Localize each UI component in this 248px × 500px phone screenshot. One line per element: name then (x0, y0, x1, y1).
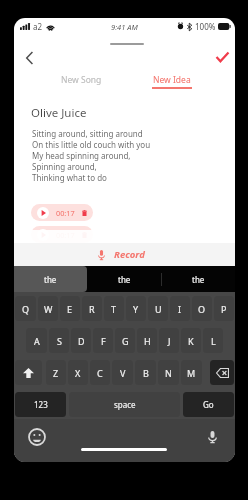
staticText: space (114, 399, 136, 410)
button[interactable]: X (68, 360, 88, 385)
button[interactable]: J (159, 328, 179, 353)
button[interactable]: G (115, 328, 135, 353)
button[interactable]: R (82, 296, 102, 321)
button[interactable]: the (14, 266, 87, 292)
button[interactable]: Y (126, 296, 146, 321)
button[interactable]: H (137, 328, 157, 353)
staticText: the (118, 274, 131, 285)
staticText: B (143, 367, 149, 379)
button[interactable]: Shift (15, 360, 42, 385)
button[interactable]: space (69, 392, 180, 417)
button[interactable]: New Song (56, 71, 106, 89)
staticText: T (111, 303, 117, 315)
button[interactable]: T (104, 296, 124, 321)
button[interactable]: O (192, 296, 212, 321)
button[interactable]: 123 (15, 392, 66, 417)
staticText: Q (22, 303, 30, 315)
staticText: Go (203, 399, 214, 410)
staticText: F (101, 335, 106, 347)
staticText: I (178, 303, 182, 315)
button[interactable]: W (38, 296, 58, 321)
staticText: Record (114, 248, 145, 261)
button[interactable]: 00:17 (31, 226, 93, 243)
staticText: 100% (195, 21, 216, 32)
staticText: N (165, 367, 172, 379)
staticText: E (67, 303, 73, 315)
button[interactable]: the (161, 266, 235, 292)
staticText: D (78, 335, 85, 347)
staticText: M (187, 367, 196, 379)
staticText: 123 (34, 399, 48, 410)
staticText: Z (53, 367, 59, 379)
button[interactable]: the (87, 266, 161, 292)
button[interactable]: C (90, 360, 110, 385)
staticText: X (75, 367, 81, 379)
staticText: the (192, 274, 205, 285)
button[interactable]: D (71, 328, 91, 353)
staticText: O (198, 303, 206, 315)
staticText: G (122, 335, 129, 347)
staticText: U (155, 303, 162, 315)
button[interactable]: K (181, 328, 201, 353)
button[interactable]: E (60, 296, 80, 321)
button[interactable]: B (135, 360, 156, 385)
button[interactable]: 00:17 (31, 204, 93, 221)
button[interactable]: V (112, 360, 133, 385)
button[interactable]: Voice input (204, 429, 220, 445)
staticText: Sitting around, sitting around On this l… (32, 128, 151, 183)
button[interactable]: F (93, 328, 113, 353)
button[interactable]: Go (183, 392, 234, 417)
staticText: the (44, 274, 57, 285)
staticText: New Song (61, 74, 102, 86)
button[interactable]: Record (14, 243, 235, 266)
staticText: P (221, 303, 227, 315)
button[interactable]: L (203, 328, 223, 353)
button[interactable]: U (148, 296, 168, 321)
staticText: K (188, 335, 194, 347)
staticText: L (211, 335, 216, 347)
staticText: Y (133, 303, 139, 315)
button[interactable]: Done (208, 43, 235, 71)
staticText: V (120, 367, 126, 379)
button[interactable]: N (158, 360, 179, 385)
staticText: 00:17 (56, 208, 75, 218)
button[interactable]: A (26, 328, 47, 353)
button[interactable]: Q (15, 296, 36, 321)
button[interactable]: Z (46, 360, 66, 385)
button[interactable]: New Idea (147, 71, 197, 89)
button[interactable]: M (181, 360, 202, 385)
staticText: H (144, 335, 151, 347)
button[interactable]: Back (15, 44, 43, 72)
staticText: W (44, 303, 53, 315)
button[interactable]: I (170, 296, 190, 321)
button[interactable]: Backspace (210, 360, 234, 385)
staticText: a2 (33, 21, 43, 32)
staticText: R (89, 303, 95, 315)
staticText: Olive Juice (31, 105, 87, 121)
staticText: C (97, 367, 103, 379)
staticText: 9:41 AM (111, 22, 138, 32)
button[interactable]: S (49, 328, 69, 353)
staticText: S (57, 335, 62, 347)
button[interactable]: Emoji (29, 429, 45, 445)
staticText: A (34, 335, 40, 347)
button[interactable]: P (214, 296, 234, 321)
staticText: J (168, 335, 171, 347)
staticText: New Idea (153, 74, 191, 86)
